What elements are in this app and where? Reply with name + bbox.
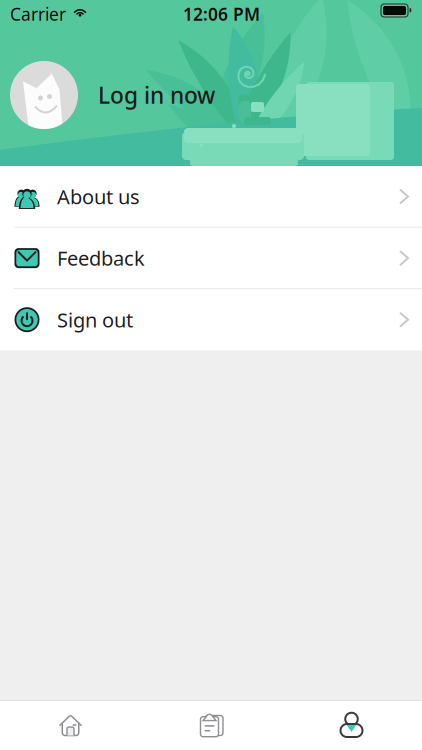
button[interactable]: Profile [281,701,422,750]
staticText: About us [57,183,140,210]
button[interactable]: Home [0,701,141,750]
button[interactable]: Orders [141,701,281,750]
button[interactable]: About us [0,166,422,227]
staticText: Feedback [57,245,145,271]
button[interactable]: Sign out [0,289,422,350]
button[interactable]: Feedback [0,228,422,289]
staticText: Sign out [57,306,133,333]
staticText: Log in now [98,80,215,110]
button[interactable]: Log in now [0,59,422,131]
staticText: 12:06 PM [183,2,260,25]
staticText: Carrier [10,2,66,25]
